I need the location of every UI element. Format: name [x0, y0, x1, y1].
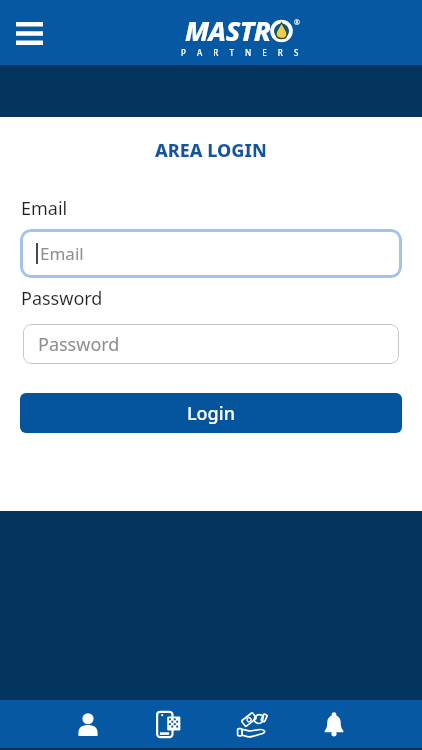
staticText: Password — [38, 332, 120, 357]
staticText: ® — [294, 18, 300, 28]
staticText: Login — [187, 401, 235, 426]
button[interactable]: Password — [23, 324, 399, 364]
button[interactable] — [145, 700, 195, 750]
button[interactable] — [309, 700, 359, 750]
staticText: P A R T N E R S — [181, 47, 303, 58]
staticText: Email — [40, 242, 84, 265]
button[interactable]: Email — [20, 229, 402, 278]
button[interactable] — [6, 10, 52, 56]
staticText: Email — [21, 196, 68, 221]
staticText: MASTR — [185, 12, 271, 49]
button[interactable] — [227, 700, 277, 750]
button[interactable] — [63, 700, 113, 750]
staticText: Password — [21, 286, 103, 311]
staticText: AREA LOGIN — [155, 138, 267, 163]
button[interactable]: Login — [20, 393, 402, 433]
